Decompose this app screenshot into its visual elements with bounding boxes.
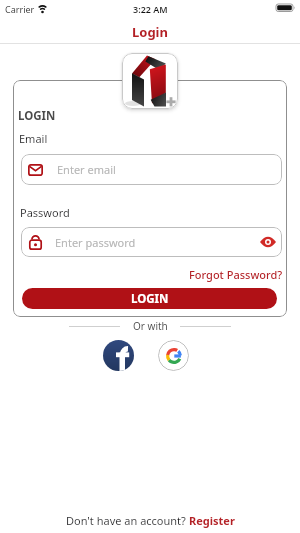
button[interactable]: Register — [189, 513, 235, 528]
staticText: Don't have an account? — [66, 513, 189, 528]
button[interactable]: Forgot Password? — [189, 267, 283, 282]
staticText: Enter email — [57, 162, 116, 177]
staticText: Register — [189, 513, 235, 528]
button[interactable] — [103, 340, 134, 371]
button[interactable]: LOGIN — [22, 288, 277, 309]
staticText: LOGIN — [131, 291, 169, 307]
button[interactable] — [256, 229, 280, 255]
button[interactable] — [158, 340, 189, 371]
staticText: Or with — [133, 319, 168, 333]
button[interactable]: Enter email — [21, 154, 282, 185]
staticText: Email — [19, 131, 48, 146]
staticText: Login — [132, 23, 168, 41]
staticText: Forgot Password? — [189, 267, 283, 282]
staticText: Enter password — [55, 235, 136, 250]
button[interactable]: Enter password — [21, 227, 282, 257]
staticText: Password — [20, 205, 70, 220]
staticText: Carrier — [5, 3, 35, 15]
staticText: LOGIN — [18, 108, 56, 124]
staticText: 3:22 AM — [133, 3, 168, 15]
